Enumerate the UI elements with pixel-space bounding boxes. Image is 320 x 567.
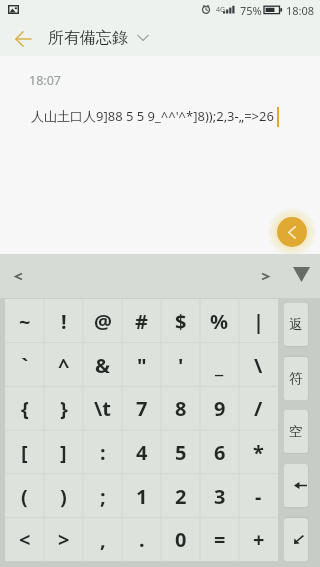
- button[interactable]: #: [122, 299, 161, 343]
- button[interactable]: %: [200, 299, 239, 343]
- staticText: 5: [175, 439, 187, 466]
- button[interactable]: ]: [44, 430, 83, 474]
- staticText: 8: [175, 395, 187, 422]
- button[interactable]: ;: [83, 474, 122, 518]
- staticText: +: [253, 526, 265, 553]
- button[interactable]: 返: [284, 303, 308, 346]
- button[interactable]: ~: [5, 299, 44, 343]
- button[interactable]: $: [161, 299, 200, 343]
- button[interactable]: 7: [122, 386, 161, 430]
- button[interactable]: 5: [161, 430, 200, 474]
- staticText: 0: [175, 526, 187, 553]
- staticText: 人山土口人9]88 5 5 9_^^'^*]8));2,3-„=>26: [31, 107, 274, 125]
- staticText: [: [21, 439, 28, 466]
- button[interactable]: 8: [161, 386, 200, 430]
- button[interactable]: 3: [200, 474, 239, 518]
- staticText: ': [178, 352, 184, 379]
- staticText: $: [175, 308, 187, 335]
- button[interactable]: 9: [200, 386, 239, 430]
- staticText: 75%: [240, 3, 262, 18]
- staticText: ": [137, 352, 147, 379]
- staticText: ~: [19, 308, 31, 335]
- button[interactable]: 空: [284, 410, 308, 453]
- button[interactable]: _: [200, 343, 239, 387]
- staticText: 1: [136, 483, 148, 510]
- button[interactable]: }: [44, 386, 83, 430]
- button[interactable]: Hide keyboard: [288, 261, 314, 287]
- button[interactable]: /: [239, 386, 278, 430]
- staticText: #: [135, 308, 148, 335]
- button[interactable]: 6: [200, 430, 239, 474]
- button[interactable]: :: [83, 430, 122, 474]
- staticText: 9: [214, 395, 226, 422]
- button[interactable]: .: [122, 517, 161, 561]
- button[interactable]: +: [239, 517, 278, 561]
- staticText: !: [61, 308, 67, 335]
- button[interactable]: -: [239, 474, 278, 518]
- staticText: /: [254, 395, 263, 422]
- staticText: ^: [58, 352, 70, 379]
- button[interactable]: [: [5, 430, 44, 474]
- button[interactable]: Back: [8, 24, 38, 54]
- button[interactable]: ): [44, 474, 83, 518]
- button[interactable]: *: [239, 430, 278, 474]
- button[interactable]: 4: [122, 430, 161, 474]
- staticText: %: [210, 308, 229, 335]
- button[interactable]: Enter: [284, 518, 308, 561]
- button[interactable]: 1: [122, 474, 161, 518]
- button[interactable]: (: [5, 474, 44, 518]
- button[interactable]: Previous note: [277, 217, 307, 247]
- staticText: &: [95, 352, 110, 379]
- staticText: 4: [136, 439, 148, 466]
- staticText: 6: [214, 439, 226, 466]
- button[interactable]: &: [83, 343, 122, 387]
- button[interactable]: @: [83, 299, 122, 343]
- button[interactable]: `: [5, 343, 44, 387]
- staticText: 2: [175, 483, 187, 510]
- staticText: (: [21, 483, 28, 510]
- staticText: 符: [289, 370, 303, 387]
- staticText: 18:07: [29, 72, 61, 89]
- button[interactable]: ': [161, 343, 200, 387]
- button[interactable]: ": [122, 343, 161, 387]
- staticText: ): [60, 483, 67, 510]
- staticText: =: [214, 526, 226, 553]
- button[interactable]: \t: [83, 386, 122, 430]
- button[interactable]: |: [239, 299, 278, 343]
- staticText: <: [19, 526, 31, 553]
- staticText: ]: [60, 439, 67, 466]
- staticText: 4G: [216, 5, 226, 15]
- button[interactable]: Previous suggestion: [6, 264, 31, 289]
- staticText: ;: [100, 483, 106, 510]
- button[interactable]: 所有備忘錄: [48, 24, 149, 52]
- staticText: *: [253, 439, 264, 466]
- button[interactable]: Next suggestion: [253, 264, 278, 289]
- staticText: 返: [289, 316, 303, 333]
- staticText: @: [94, 308, 112, 335]
- staticText: {: [21, 395, 29, 422]
- staticText: |: [253, 308, 265, 335]
- button[interactable]: <: [5, 517, 44, 561]
- button[interactable]: \: [239, 343, 278, 387]
- button[interactable]: 符: [284, 357, 308, 400]
- button[interactable]: {: [5, 386, 44, 430]
- button[interactable]: 2: [161, 474, 200, 518]
- button[interactable]: ,: [83, 517, 122, 561]
- staticText: .: [139, 526, 145, 553]
- staticText: _: [215, 352, 224, 379]
- button[interactable]: 0: [161, 517, 200, 561]
- staticText: \: [254, 352, 263, 379]
- button[interactable]: Backspace: [284, 464, 308, 507]
- button[interactable]: ^: [44, 343, 83, 387]
- staticText: 3: [214, 483, 226, 510]
- staticText: `: [21, 352, 29, 379]
- staticText: 空: [289, 423, 303, 440]
- staticText: ,: [100, 526, 106, 553]
- staticText: :: [100, 439, 106, 466]
- button[interactable]: >: [44, 517, 83, 561]
- staticText: 18:08: [286, 3, 315, 18]
- staticText: 所有備忘錄: [48, 28, 128, 48]
- button[interactable]: !: [44, 299, 83, 343]
- button[interactable]: =: [200, 517, 239, 561]
- staticText: 7: [136, 395, 148, 422]
